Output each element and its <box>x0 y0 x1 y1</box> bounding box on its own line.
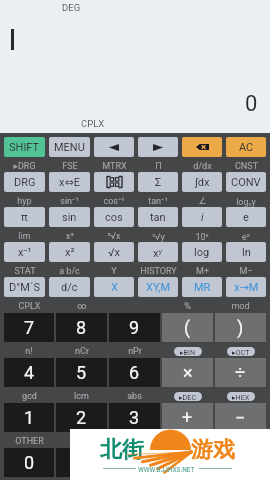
staticText: % <box>184 301 191 312</box>
staticText: CNST <box>235 161 258 172</box>
button[interactable]: XY,M <box>138 277 178 297</box>
staticText: MR <box>194 281 211 294</box>
staticText: ³√x <box>107 231 121 242</box>
button[interactable]: ▸HEX <box>227 392 255 401</box>
button[interactable]: MR <box>182 277 222 297</box>
button[interactable]: ( <box>162 313 213 342</box>
staticText: ˣ√y <box>152 230 165 242</box>
staticText: X <box>111 281 118 294</box>
staticText: e <box>243 211 249 224</box>
button[interactable]: X <box>94 277 134 297</box>
button[interactable]: D°M´S <box>4 277 45 297</box>
button[interactable]: 0 <box>4 448 54 477</box>
button[interactable]: AC <box>226 137 266 157</box>
staticText: OTHER <box>15 436 44 447</box>
button[interactable]: ) <box>215 313 266 342</box>
staticText: ANS <box>170 452 206 473</box>
button[interactable]: Move right <box>138 137 178 157</box>
staticText: ▸HEX <box>232 393 250 401</box>
button[interactable]: ▸BIN <box>174 347 202 356</box>
button[interactable]: SHIFT <box>4 137 45 157</box>
staticText: XY,M <box>146 281 171 294</box>
staticText: cos⁻¹ <box>103 196 125 207</box>
button[interactable]: Delete <box>182 137 222 157</box>
staticText: 7 <box>24 317 35 338</box>
button[interactable]: ln <box>226 242 266 262</box>
staticText: ∞ <box>77 301 87 312</box>
button[interactable]: . <box>56 448 107 477</box>
button[interactable]: sin <box>49 207 90 227</box>
button[interactable]: √x <box>94 242 134 262</box>
button[interactable]: = <box>215 448 266 477</box>
button[interactable]: ∫dx <box>182 172 222 192</box>
staticText: ▸BIN <box>180 348 196 356</box>
staticText: sin <box>62 211 77 224</box>
staticText: gcd <box>22 391 37 402</box>
button[interactable]: Move left <box>94 137 134 157</box>
button[interactable]: Σ <box>138 172 178 192</box>
button[interactable]: CONV <box>226 172 266 192</box>
button[interactable]: 6 <box>109 358 160 387</box>
button[interactable]: i <box>182 207 222 227</box>
button[interactable]: MENU <box>49 137 90 157</box>
button[interactable]: tan <box>138 207 178 227</box>
button[interactable]: 8 <box>56 313 107 342</box>
staticText: + <box>182 407 193 428</box>
button[interactable]: + <box>162 403 213 432</box>
staticText: E <box>129 452 140 473</box>
staticText: MENU <box>54 141 85 154</box>
staticText: HISTORY <box>140 266 177 277</box>
staticText: ▸DRG <box>13 161 36 172</box>
button[interactable]: ANS <box>162 448 213 477</box>
button[interactable]: 1 <box>4 403 54 432</box>
button[interactable]: log <box>182 242 222 262</box>
staticText: 3 <box>129 407 140 428</box>
staticText: ( <box>184 317 191 338</box>
other: Matrix <box>105 175 124 189</box>
staticText: eˣ <box>242 230 250 242</box>
button[interactable]: x→M <box>226 277 266 297</box>
staticText: √x <box>108 246 121 259</box>
staticText: x³ <box>66 231 74 242</box>
button[interactable]: Matrix <box>94 172 134 192</box>
staticText: logₓy <box>236 195 256 207</box>
staticText: CPLX <box>81 118 105 129</box>
button[interactable]: e <box>226 207 266 227</box>
staticText: M− <box>239 266 253 277</box>
button[interactable]: 5 <box>56 358 107 387</box>
staticText: tan <box>150 211 166 224</box>
button[interactable]: ▸DEC <box>174 392 202 401</box>
button[interactable]: xʸ <box>138 242 178 262</box>
other: Move right <box>153 144 163 151</box>
button[interactable]: 3 <box>109 403 160 432</box>
button[interactable]: 4 <box>4 358 54 387</box>
button[interactable]: DRG <box>4 172 45 192</box>
button[interactable]: ▸OCT <box>227 347 255 356</box>
button[interactable]: x⁻¹ <box>4 242 45 262</box>
staticText: SHIFT <box>9 141 40 154</box>
button[interactable]: × <box>162 358 213 387</box>
button[interactable]: 2 <box>56 403 107 432</box>
button[interactable]: cos <box>94 207 134 227</box>
button[interactable]: E <box>109 448 160 477</box>
staticText: x² <box>65 246 75 259</box>
staticText: i <box>201 211 204 224</box>
staticText: DRG <box>14 176 36 189</box>
staticText: ▸DEC <box>179 393 197 401</box>
staticText: 0 <box>245 91 258 117</box>
staticText: cos <box>105 211 123 224</box>
staticText: CONV <box>231 176 261 189</box>
button[interactable]: x⇔E <box>49 172 90 192</box>
button[interactable]: 9 <box>109 313 160 342</box>
button[interactable]: d/c <box>49 277 90 297</box>
button[interactable]: π <box>4 207 45 227</box>
button[interactable]: x² <box>49 242 90 262</box>
other: Move left <box>109 144 119 151</box>
staticText: FSE <box>62 161 78 172</box>
staticText: − <box>235 407 246 428</box>
staticText: 2 <box>76 407 87 428</box>
button[interactable]: − <box>215 403 266 432</box>
button[interactable]: ÷ <box>215 358 266 387</box>
button[interactable]: 7 <box>4 313 54 342</box>
